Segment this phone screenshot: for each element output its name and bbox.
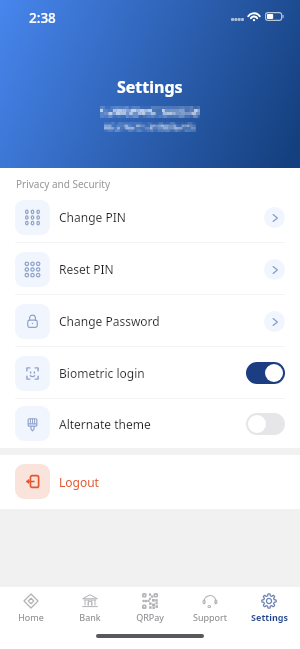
- staticText: Home: [18, 611, 44, 623]
- staticText: Settings: [251, 611, 288, 623]
- staticText: Change Password: [59, 313, 160, 329]
- staticText: Alternate theme: [59, 416, 151, 432]
- staticText: Biometric login: [59, 365, 145, 381]
- staticText: Logout: [59, 474, 99, 490]
- button[interactable]: Support: [181, 593, 239, 623]
- button[interactable]: Biometric login: [0, 347, 300, 399]
- button[interactable]: [246, 413, 285, 435]
- staticText: Reset PIN: [59, 261, 114, 277]
- staticText: Change PIN: [59, 209, 126, 225]
- staticText: Bank: [79, 611, 101, 623]
- staticText: Privacy and Security: [16, 177, 111, 191]
- button[interactable]: Change Password: [0, 295, 300, 347]
- staticText: QRPay: [136, 611, 164, 623]
- button[interactable]: Alternate theme: [0, 399, 300, 448]
- button[interactable]: Reset PIN: [0, 243, 300, 295]
- button[interactable]: Bank: [61, 593, 119, 623]
- staticText: Settings: [117, 76, 183, 98]
- button[interactable]: Logout: [0, 455, 300, 508]
- staticText: Support: [193, 611, 227, 623]
- staticText: 2:38: [29, 9, 56, 27]
- button[interactable]: [246, 362, 285, 384]
- button[interactable]: Home: [2, 593, 60, 623]
- button[interactable]: QRPay: [121, 593, 179, 623]
- button[interactable]: Settings: [240, 593, 298, 623]
- button[interactable]: Change PIN: [0, 191, 300, 243]
